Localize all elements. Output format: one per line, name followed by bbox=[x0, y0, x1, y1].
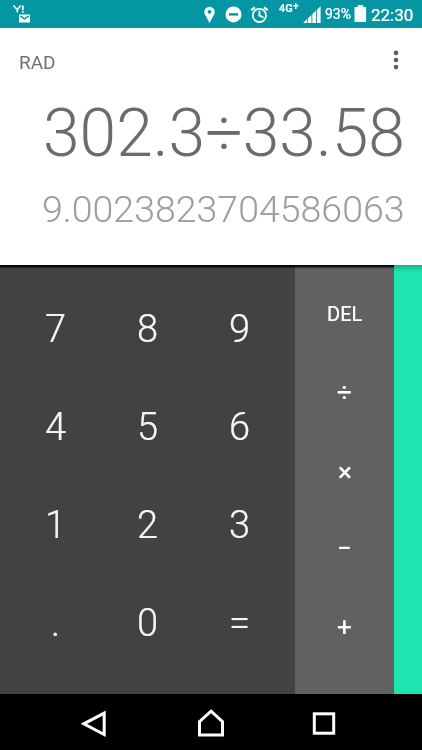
button[interactable]: ÷ bbox=[295, 353, 394, 431]
staticText: = bbox=[229, 601, 251, 646]
button[interactable]: 8 bbox=[102, 280, 194, 378]
button[interactable]: Home bbox=[173, 694, 249, 750]
button[interactable]: = bbox=[194, 574, 286, 672]
button[interactable]: 1 bbox=[10, 476, 102, 574]
button[interactable]: 9 bbox=[194, 280, 286, 378]
staticText: 9.0023823704586063 bbox=[42, 187, 405, 231]
staticText: + bbox=[337, 612, 352, 642]
staticText: RAD bbox=[19, 51, 56, 73]
button[interactable]: 0 bbox=[102, 574, 194, 672]
staticText: 3 bbox=[229, 503, 251, 548]
button[interactable]: × bbox=[295, 433, 394, 511]
staticText: 93% bbox=[325, 6, 351, 22]
button[interactable]: Back bbox=[56, 694, 132, 750]
staticText: 7 bbox=[45, 307, 67, 352]
button[interactable]: 7 bbox=[10, 280, 102, 378]
staticText: 302.3÷33.58 bbox=[43, 95, 405, 172]
staticText: 6 bbox=[229, 405, 251, 450]
staticText: × bbox=[338, 457, 352, 487]
staticText: + bbox=[293, 1, 299, 13]
button[interactable]: DEL bbox=[295, 274, 394, 352]
button[interactable]: 6 bbox=[194, 378, 286, 476]
button[interactable]: + bbox=[295, 588, 394, 666]
staticText: 5 bbox=[137, 405, 159, 450]
button[interactable]: . bbox=[10, 574, 102, 672]
button[interactable]: − bbox=[295, 509, 394, 587]
staticText: 8 bbox=[137, 307, 159, 352]
button[interactable]: 5 bbox=[102, 378, 194, 476]
button[interactable]: 4 bbox=[10, 378, 102, 476]
staticText: − bbox=[337, 533, 352, 563]
staticText: 22:30 bbox=[371, 5, 414, 25]
staticText: DEL bbox=[327, 302, 363, 325]
staticText: 4G bbox=[279, 2, 293, 15]
button[interactable]: More options bbox=[382, 46, 410, 74]
staticText: 2 bbox=[137, 503, 159, 548]
button[interactable]: 3 bbox=[194, 476, 286, 574]
button[interactable]: 2 bbox=[102, 476, 194, 574]
staticText: ÷ bbox=[337, 377, 352, 407]
staticText: 9 bbox=[229, 307, 251, 352]
staticText: 0 bbox=[137, 601, 159, 646]
staticText: 4 bbox=[45, 405, 67, 450]
button[interactable]: Recents bbox=[286, 694, 362, 750]
staticText: . bbox=[51, 601, 61, 646]
staticText: 1 bbox=[45, 503, 67, 548]
